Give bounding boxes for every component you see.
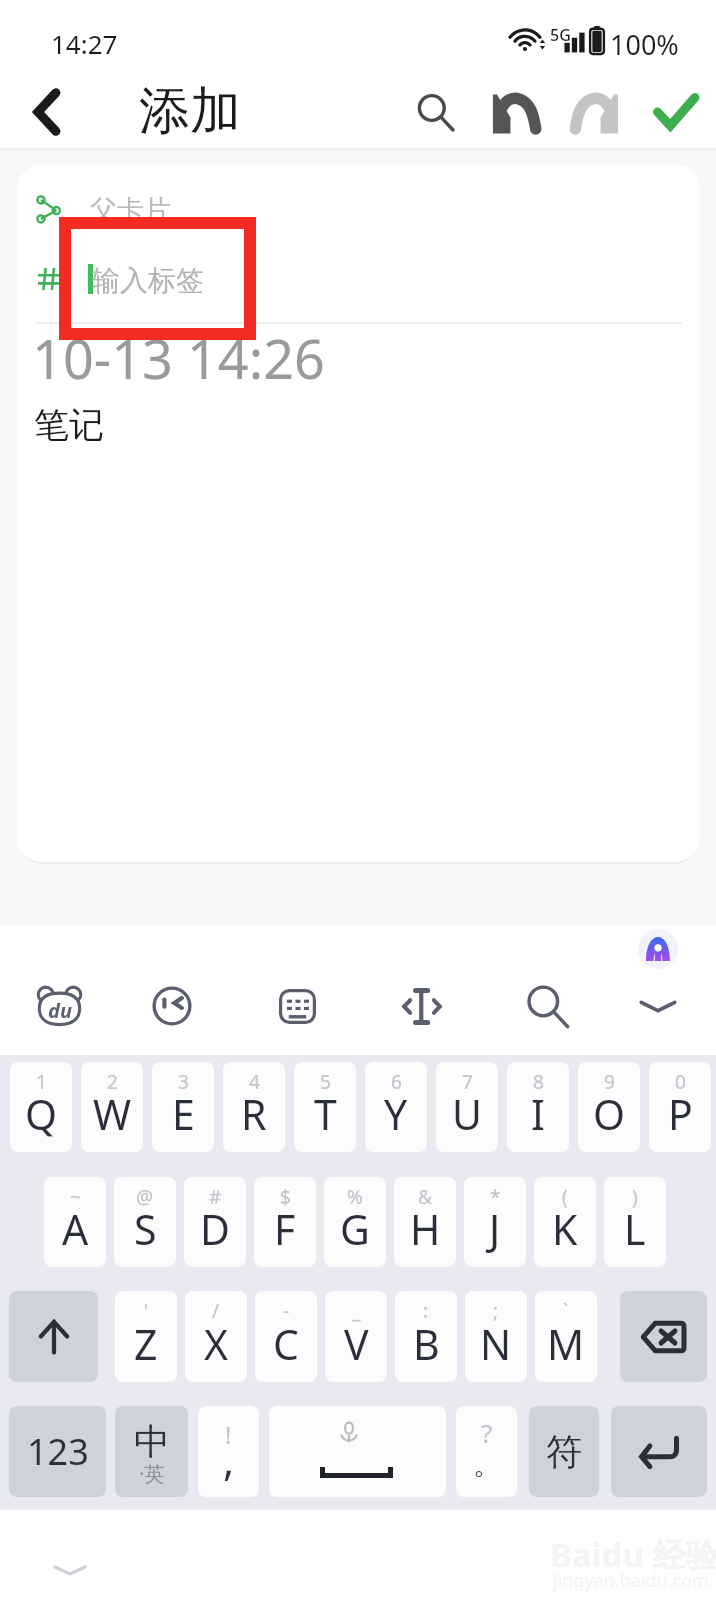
- staticText: S: [134, 1201, 157, 1257]
- staticText: V: [344, 1316, 369, 1372]
- button[interactable]: Keyboard layout: [257, 972, 337, 1040]
- button[interactable]: ~: [44, 1177, 106, 1267]
- staticText: L: [624, 1201, 646, 1257]
- staticText: B: [413, 1316, 440, 1372]
- button[interactable]: AI assistant: [638, 929, 678, 969]
- button[interactable]: 9: [578, 1062, 640, 1152]
- button[interactable]: %: [324, 1177, 386, 1267]
- button[interactable]: 5: [294, 1062, 356, 1152]
- staticText: W: [93, 1086, 132, 1142]
- button[interactable]: 4: [223, 1062, 285, 1152]
- button[interactable]: ;: [465, 1291, 527, 1382]
- staticText: H: [410, 1201, 441, 1257]
- button[interactable]: ?: [456, 1406, 517, 1497]
- button[interactable]: 8: [507, 1062, 569, 1152]
- button[interactable]: ': [115, 1291, 177, 1382]
- button[interactable]: 0: [649, 1062, 711, 1152]
- staticText: T: [314, 1086, 337, 1142]
- staticText: jingyan.baidu.com: [553, 1568, 709, 1593]
- staticText: N: [480, 1316, 512, 1372]
- button[interactable]: Redo: [560, 72, 632, 151]
- button[interactable]: !: [198, 1406, 259, 1497]
- staticText: _: [352, 1298, 361, 1324]
- button[interactable]: (: [534, 1177, 596, 1267]
- button[interactable]: &: [394, 1177, 456, 1267]
- button[interactable]: -: [255, 1291, 317, 1382]
- staticText: 123: [27, 1427, 89, 1476]
- staticText: #: [209, 1184, 222, 1210]
- staticText: 5G: [550, 24, 571, 46]
- button[interactable]: Back: [8, 72, 86, 151]
- staticText: K: [552, 1201, 578, 1257]
- staticText: $: [280, 1184, 291, 1210]
- staticText: 输入标签: [92, 263, 204, 298]
- staticText: 中: [134, 1419, 170, 1464]
- staticText: R: [241, 1086, 267, 1142]
- staticText: J: [489, 1201, 501, 1257]
- button[interactable]: Move cursor: [382, 972, 462, 1040]
- staticText: 8: [533, 1069, 544, 1095]
- button[interactable]: Done: [640, 72, 712, 151]
- staticText: 14:27: [51, 26, 118, 61]
- staticText: 笔记: [34, 403, 104, 447]
- button[interactable]: `: [535, 1291, 597, 1382]
- button[interactable]: $: [254, 1177, 316, 1267]
- button[interactable]: Collapse: [50, 1550, 90, 1590]
- staticText: P: [668, 1086, 693, 1142]
- button[interactable]: Space: [269, 1406, 446, 1497]
- staticText: 9: [604, 1069, 615, 1095]
- staticText: 1: [36, 1069, 47, 1095]
- button[interactable]: ): [604, 1177, 666, 1267]
- staticText: -: [283, 1298, 290, 1324]
- button[interactable]: /: [185, 1291, 247, 1382]
- staticText: *: [490, 1184, 501, 1210]
- staticText: ): [632, 1184, 638, 1210]
- button[interactable]: Enter: [611, 1406, 707, 1497]
- staticText: 4: [249, 1069, 260, 1095]
- staticText: /: [212, 1298, 220, 1324]
- button[interactable]: 6: [365, 1062, 427, 1152]
- button[interactable]: *: [464, 1177, 526, 1267]
- staticText: O: [593, 1086, 626, 1142]
- button[interactable]: Backspace: [620, 1291, 707, 1382]
- staticText: F: [274, 1201, 296, 1257]
- staticText: du: [48, 997, 72, 1024]
- staticText: C: [273, 1316, 299, 1372]
- staticText: ': [144, 1298, 149, 1324]
- staticText: 100%: [610, 26, 679, 63]
- button[interactable]: 1: [10, 1062, 72, 1152]
- staticText: 10-13 14:26: [32, 321, 326, 395]
- button[interactable]: Undo: [479, 72, 551, 151]
- staticText: @: [136, 1184, 154, 1210]
- button[interactable]: Baidu input: [19, 972, 99, 1040]
- button[interactable]: Search: [399, 72, 471, 151]
- button[interactable]: _: [325, 1291, 387, 1382]
- staticText: ~: [70, 1184, 81, 1210]
- staticText: E: [172, 1086, 195, 1142]
- button[interactable]: Shift: [9, 1291, 98, 1382]
- staticText: 2: [107, 1069, 118, 1095]
- button[interactable]: :: [395, 1291, 457, 1382]
- button[interactable]: Chinese / English: [115, 1406, 188, 1497]
- staticText: Q: [25, 1086, 58, 1142]
- staticText: 0: [675, 1069, 686, 1095]
- button[interactable]: 7: [436, 1062, 498, 1152]
- staticText: Z: [134, 1316, 158, 1372]
- staticText: ;: [493, 1298, 499, 1324]
- staticText: Baidu 经验: [550, 1532, 716, 1577]
- staticText: 6: [391, 1069, 402, 1095]
- button[interactable]: Search: [507, 972, 587, 1040]
- staticText: Y: [384, 1086, 408, 1142]
- button[interactable]: Emoji: [132, 972, 212, 1040]
- staticText: &: [418, 1184, 432, 1210]
- button[interactable]: 符: [529, 1406, 599, 1497]
- button[interactable]: Hide keyboard: [618, 972, 698, 1040]
- button[interactable]: 2: [81, 1062, 143, 1152]
- button[interactable]: 3: [152, 1062, 214, 1152]
- button[interactable]: @: [114, 1177, 176, 1267]
- staticText: 7: [462, 1069, 473, 1095]
- staticText: U: [452, 1086, 482, 1142]
- button[interactable]: 123: [9, 1406, 106, 1497]
- button[interactable]: #: [184, 1177, 246, 1267]
- staticText: D: [200, 1201, 230, 1257]
